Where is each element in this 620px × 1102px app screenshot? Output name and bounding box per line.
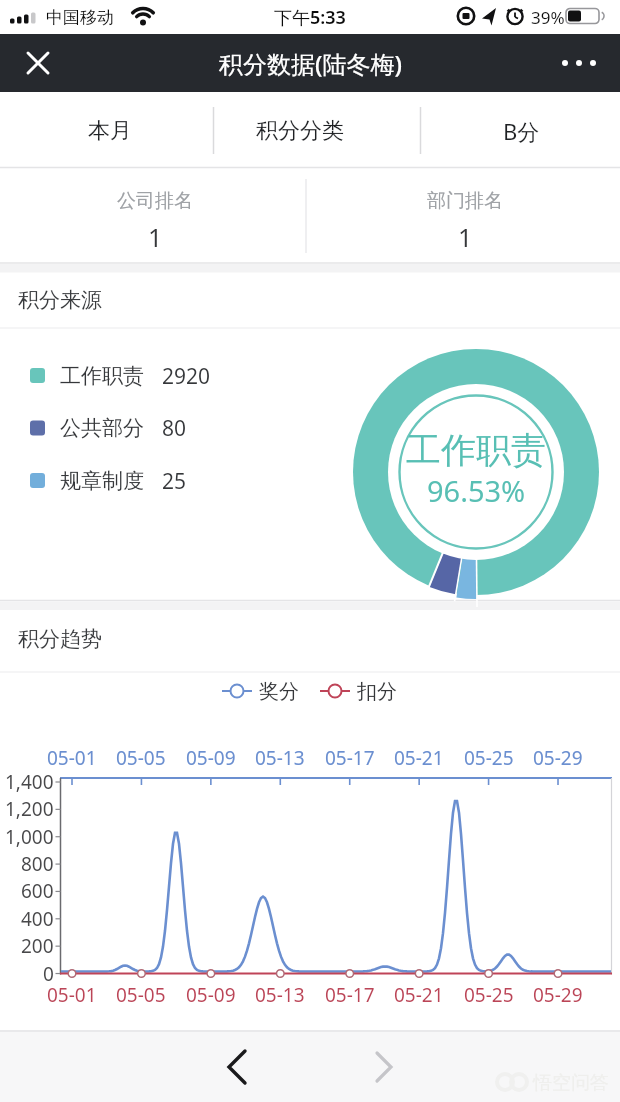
- staticText: 悟空问答: [533, 1071, 609, 1095]
- staticText: 1: [458, 220, 473, 254]
- staticText: 工作职责: [60, 363, 144, 389]
- staticText: 积分分类: [256, 117, 344, 145]
- staticText: 本月: [88, 117, 132, 145]
- staticText: 39%: [531, 6, 565, 29]
- staticText: 200: [21, 933, 54, 959]
- staticText: 1: [148, 220, 163, 254]
- staticText: 05-25: [464, 745, 514, 771]
- staticText: 05-01: [47, 745, 97, 771]
- staticText: 部门排名: [427, 189, 503, 213]
- staticText: 96.53%: [427, 471, 526, 510]
- staticText: 0: [43, 961, 54, 987]
- staticText: 05-13: [255, 982, 305, 1008]
- staticText: 600: [21, 878, 54, 904]
- button[interactable]: [214, 94, 420, 166]
- staticText: 积分趋势: [18, 626, 102, 652]
- staticText: 规章制度: [60, 468, 144, 494]
- staticText: 05-21: [394, 745, 444, 771]
- staticText: 下午5:33: [274, 5, 346, 30]
- button[interactable]: [550, 44, 610, 84]
- staticText: 05-05: [116, 982, 166, 1008]
- staticText: 400: [21, 906, 54, 932]
- staticText: B分: [503, 116, 540, 146]
- staticText: 05-29: [533, 745, 583, 771]
- staticText: 800: [21, 851, 54, 877]
- button[interactable]: [205, 1037, 269, 1097]
- staticText: 05-01: [47, 982, 97, 1008]
- button[interactable]: [16, 44, 62, 84]
- staticText: 公司排名: [117, 189, 193, 213]
- staticText: 05-13: [255, 745, 305, 771]
- staticText: 80: [162, 414, 187, 443]
- staticText: 2920: [162, 362, 211, 391]
- staticText: 05-09: [186, 982, 236, 1008]
- staticText: 工作职责: [406, 428, 546, 472]
- staticText: 05-17: [325, 745, 375, 771]
- staticText: 扣分: [357, 679, 397, 704]
- staticText: 05-25: [464, 982, 514, 1008]
- staticText: 奖分: [259, 679, 299, 704]
- staticText: 积分数据(陆冬梅): [219, 47, 402, 80]
- staticText: 05-29: [533, 982, 583, 1008]
- button[interactable]: [421, 94, 620, 166]
- staticText: 公共部分: [60, 415, 144, 441]
- staticText: 05-05: [116, 745, 166, 771]
- staticText: 05-17: [325, 982, 375, 1008]
- button[interactable]: [0, 94, 213, 166]
- staticText: 05-09: [186, 745, 236, 771]
- button[interactable]: [352, 1037, 416, 1097]
- staticText: 中国移动: [46, 7, 114, 28]
- staticText: 1,200: [5, 796, 54, 822]
- staticText: 25: [162, 467, 187, 496]
- staticText: 05-21: [394, 982, 444, 1008]
- staticText: 积分来源: [18, 287, 102, 313]
- staticText: 1,000: [5, 824, 54, 850]
- staticText: 1,400: [5, 769, 54, 795]
